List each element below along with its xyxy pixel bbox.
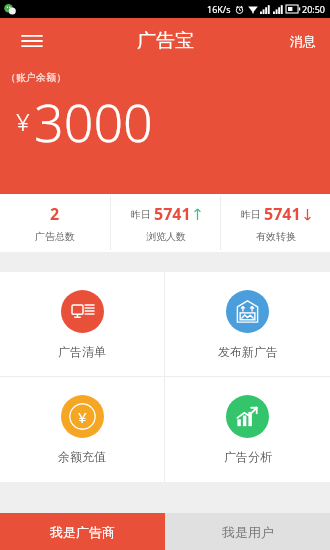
button[interactable]: 消息 (276, 23, 330, 59)
staticText: 发布新广告 (218, 344, 278, 359)
staticText: 2 (50, 203, 60, 225)
button[interactable]: 广告清单 (0, 272, 164, 376)
staticText: 广告宝 (137, 29, 194, 53)
staticText: （账户余额） (6, 71, 66, 84)
button[interactable]: 发布新广告 (165, 272, 330, 376)
staticText: 有效转换 (256, 230, 296, 243)
staticText: 广告分析 (224, 449, 272, 464)
staticText: 5741 (264, 203, 301, 225)
button[interactable]: 我是广告商 (0, 513, 165, 550)
staticText: 我是广告商 (50, 524, 115, 540)
staticText: ¥ (78, 407, 87, 427)
staticText: 广告清单 (58, 344, 106, 359)
staticText: 昨日 (131, 207, 154, 221)
staticText: 我是用户 (222, 524, 274, 540)
button[interactable]: 广告分析 (165, 377, 330, 482)
staticText: 20:50 (302, 3, 326, 15)
staticText: 16K/s (207, 3, 231, 15)
staticText: 浏览人数 (146, 230, 186, 243)
staticText: 余额充值 (58, 449, 106, 464)
button[interactable]: 2 (0, 194, 110, 252)
staticText: 3000 (34, 86, 153, 157)
staticText: 5741 (154, 203, 191, 225)
button[interactable]: 昨日 (221, 194, 330, 252)
staticText: 消息 (290, 33, 316, 49)
button[interactable]: Menu (12, 21, 52, 61)
button[interactable]: 我是用户 (165, 513, 330, 550)
staticText: 广告总数 (35, 230, 75, 243)
staticText: ¥ (16, 105, 30, 138)
staticText: 昨日 (241, 207, 264, 221)
button[interactable]: ¥ (0, 377, 164, 482)
button[interactable]: 昨日 (111, 194, 220, 252)
